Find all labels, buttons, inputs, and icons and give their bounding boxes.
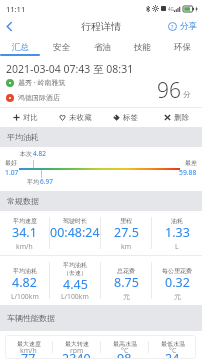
staticText: 省油 bbox=[94, 42, 111, 53]
staticText: 未收藏 bbox=[69, 113, 92, 122]
staticText: 车辆性能数据 bbox=[7, 313, 55, 323]
staticText: 平均油耗 bbox=[13, 267, 37, 275]
staticText: 平均速度 bbox=[13, 217, 37, 225]
staticText: 越秀 · 岭南雅筑 bbox=[18, 78, 66, 88]
button[interactable]: 平均油耗 （去速） bbox=[50, 256, 100, 305]
button[interactable]: 对比 bbox=[0, 108, 50, 127]
button[interactable]: 未收藏 bbox=[50, 108, 100, 127]
button[interactable]: ? bbox=[168, 21, 197, 32]
staticText: 98 bbox=[117, 350, 132, 359]
button[interactable]: 最大速度 bbox=[5, 335, 52, 359]
staticText: 汇总 bbox=[12, 42, 29, 53]
staticText: L/100km bbox=[11, 292, 39, 301]
staticText: 常规数据 bbox=[7, 196, 39, 206]
staticText: 1.33 bbox=[165, 224, 190, 241]
button[interactable]: 省油 bbox=[82, 36, 122, 58]
staticText: 最大转速 bbox=[65, 340, 89, 348]
button[interactable]: 最高水温 bbox=[101, 335, 148, 359]
staticText: 11:11 bbox=[6, 4, 26, 14]
staticText: 4.82 bbox=[12, 274, 37, 291]
staticText: 最好 bbox=[5, 159, 17, 167]
staticText: rpm bbox=[70, 346, 84, 355]
staticText: 4.45 bbox=[63, 276, 88, 293]
staticText: °C bbox=[169, 346, 177, 355]
staticText: 1.07 bbox=[5, 168, 19, 177]
staticText: °C bbox=[121, 346, 129, 355]
staticText: 2340 bbox=[62, 350, 91, 359]
staticText: 平均油耗 bbox=[7, 132, 39, 142]
button[interactable]: 最大转速 bbox=[53, 335, 100, 359]
staticText: 6.97 bbox=[40, 177, 53, 186]
staticText: km/h bbox=[20, 346, 37, 355]
staticText: 元 bbox=[174, 292, 181, 301]
staticText: 安全 bbox=[53, 42, 70, 53]
staticText: 总花费 bbox=[117, 267, 135, 275]
staticText: 环保 bbox=[174, 42, 191, 53]
staticText: 59.88 bbox=[179, 168, 197, 177]
staticText: 元 bbox=[123, 292, 130, 301]
staticText: 鸿德国际酒店 bbox=[18, 93, 60, 102]
staticText: 分享 bbox=[180, 21, 197, 32]
staticText: 最差 bbox=[185, 159, 197, 167]
staticText: 34.1 bbox=[12, 224, 37, 241]
staticText: 4G bbox=[168, 6, 174, 12]
button[interactable]: 总花费 bbox=[101, 256, 151, 305]
staticText: 技能 bbox=[134, 42, 151, 53]
staticText: 里程 bbox=[120, 217, 132, 225]
button[interactable]: Back bbox=[0, 17, 19, 36]
button[interactable]: 最低水温 bbox=[149, 335, 196, 359]
staticText: 8.75 bbox=[114, 274, 139, 291]
button[interactable]: 平均油耗 bbox=[0, 256, 49, 305]
staticText: 96 bbox=[157, 76, 181, 105]
button[interactable]: 汇总 bbox=[0, 36, 41, 58]
button[interactable]: 每公里花费 bbox=[152, 256, 202, 305]
button[interactable]: 里程 bbox=[101, 211, 151, 255]
staticText: 每公里花费 bbox=[162, 267, 192, 275]
button[interactable]: 环保 bbox=[162, 36, 202, 58]
staticText: 2021-03-04 07:43 至 08:31 bbox=[6, 62, 134, 76]
staticText: L bbox=[175, 242, 179, 251]
staticText: 最高水温 bbox=[113, 340, 137, 348]
staticText: 27.5 bbox=[114, 224, 139, 241]
staticText: 平均 bbox=[27, 178, 39, 186]
staticText: 删除 bbox=[174, 113, 189, 122]
staticText: km/h bbox=[16, 242, 33, 251]
staticText: km bbox=[121, 242, 131, 251]
staticText: 行程详情 bbox=[81, 20, 121, 33]
button[interactable]: 删除 bbox=[151, 108, 202, 127]
staticText: 对比 bbox=[23, 113, 38, 122]
staticText: 最大速度 bbox=[17, 340, 41, 348]
staticText: 本次 bbox=[20, 150, 32, 158]
button[interactable]: 驾驶时长 bbox=[50, 211, 100, 255]
staticText: 最低水温 bbox=[161, 340, 185, 348]
staticText: 标签 bbox=[123, 113, 138, 122]
staticText: 4.82 bbox=[33, 149, 46, 158]
staticText: 油耗 bbox=[171, 217, 183, 225]
button[interactable]: 油耗 bbox=[152, 211, 202, 255]
staticText: 驾驶时长 bbox=[63, 217, 87, 225]
button[interactable]: 标签 bbox=[100, 108, 151, 127]
button[interactable]: 平均速度 bbox=[0, 211, 49, 255]
button[interactable]: 安全 bbox=[41, 36, 82, 58]
button[interactable]: 技能 bbox=[122, 36, 162, 58]
staticText: 平均油耗 （去速） bbox=[63, 261, 87, 277]
staticText: ? bbox=[171, 23, 174, 30]
staticText: L/100km bbox=[61, 292, 89, 301]
staticText: 00:48:24 bbox=[50, 224, 100, 241]
staticText: 77 bbox=[21, 350, 36, 359]
staticText: 分 bbox=[183, 90, 191, 99]
staticText: 24 bbox=[165, 350, 180, 359]
staticText: 0.32 bbox=[165, 274, 190, 291]
